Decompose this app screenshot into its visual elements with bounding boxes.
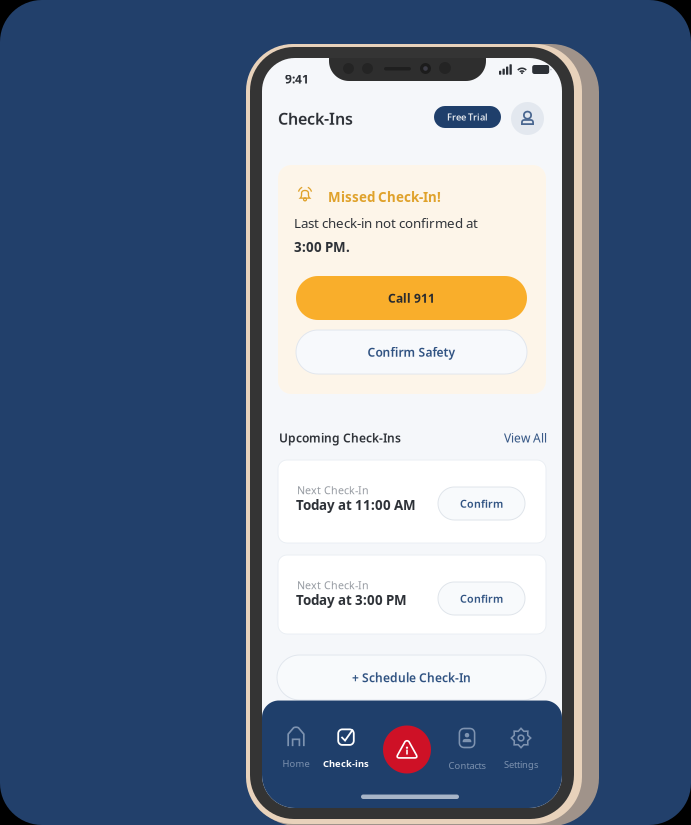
staticText: Upcoming Check-Ins [279,430,401,446]
staticText: Missed Check-In! [328,188,441,206]
staticText: Settings [504,758,538,771]
staticText: Free Trial [447,111,488,123]
staticText: Call 911 [388,290,435,306]
staticText: View All [504,430,547,446]
button[interactable]: Confirm [438,582,525,615]
button[interactable]: Contacts [441,728,493,780]
button[interactable]: Settings [497,727,545,779]
button[interactable]: Account [511,102,544,135]
staticText: Confirm Safety [367,344,455,360]
button[interactable]: Check-ins [322,726,370,778]
staticText: Today at 11:00 AM [296,496,416,514]
staticText: Check-ins [323,757,369,770]
staticText: Last check-in not confirmed at [294,214,478,232]
button[interactable]: Confirm [438,487,525,520]
button[interactable]: Free Trial [434,106,501,128]
staticText: + Schedule Check-In [352,669,471,685]
staticText: Contacts [448,759,485,772]
staticText: 9:41 [285,71,309,87]
button[interactable]: + Schedule Check-In [277,655,546,700]
button[interactable]: Call 911 [296,276,527,320]
staticText: Next Check-In [297,483,369,497]
button[interactable]: View All [504,430,547,446]
button[interactable]: Emergency alert [383,725,431,773]
staticText: Today at 3:00 PM [296,591,407,609]
staticText: Next Check-In [297,578,369,592]
staticText: Home [282,757,309,770]
button[interactable]: Home [272,726,320,778]
button[interactable]: Confirm Safety [296,330,527,374]
staticText: Confirm [460,591,503,606]
staticText: 3:00 PM. [294,238,350,256]
staticText: Confirm [460,496,503,511]
staticText: Check-Ins [278,108,353,129]
